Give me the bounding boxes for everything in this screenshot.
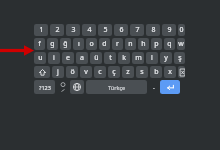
staticText: g (50, 39, 55, 49)
staticText: 7 (135, 25, 140, 35)
button[interactable]: ğ (60, 38, 71, 50)
button[interactable]: b (150, 66, 162, 78)
button[interactable]: 3 (66, 24, 80, 36)
staticText: k (122, 53, 126, 63)
staticText: 8 (151, 25, 156, 35)
staticText: 0 (179, 25, 184, 35)
button[interactable]: 7 (130, 24, 144, 36)
button[interactable]: Enter (160, 80, 180, 94)
button[interactable]: k (118, 52, 130, 64)
button[interactable]: ü (90, 52, 102, 64)
staticText: r (116, 39, 119, 49)
staticText: v (84, 67, 88, 77)
button[interactable]: Türkçe (86, 80, 147, 94)
staticText: 3 (71, 25, 76, 35)
staticText: x (168, 67, 172, 77)
staticText: h (141, 39, 146, 49)
staticText: b (154, 67, 159, 77)
staticText: u (38, 53, 43, 63)
button[interactable] (178, 66, 185, 78)
button[interactable]: v (80, 66, 92, 78)
button[interactable]: y (160, 52, 172, 64)
staticText: 1 (39, 25, 44, 35)
staticText: ş (178, 53, 182, 63)
staticText: 5 (103, 25, 108, 35)
staticText: 4 (87, 25, 92, 35)
staticText: a (80, 53, 84, 63)
staticText: w (178, 39, 184, 49)
button[interactable]: x (164, 66, 176, 78)
button[interactable]: z (122, 66, 134, 78)
button[interactable]: 4 (82, 24, 96, 36)
button[interactable]: 1 (34, 24, 48, 36)
staticText: 9 (167, 25, 172, 35)
button[interactable]: g (47, 38, 58, 50)
button[interactable]: l (146, 52, 158, 64)
button[interactable]: 0 (178, 24, 185, 36)
button[interactable]: Change language (70, 80, 84, 94)
button[interactable]: u (34, 52, 46, 64)
button[interactable]: i (48, 52, 60, 64)
button[interactable]: m (132, 52, 144, 64)
button[interactable] (34, 66, 50, 78)
button[interactable]: ç (108, 66, 120, 78)
button[interactable]: 8 (146, 24, 160, 36)
button[interactable]: d (99, 38, 110, 50)
button[interactable]: e (62, 52, 74, 64)
button[interactable]: ?123 (34, 80, 55, 94)
button[interactable]: Emoji (57, 80, 68, 94)
staticText: Türkçe (108, 84, 126, 91)
button[interactable]: t (104, 52, 116, 64)
staticText: c (98, 67, 102, 77)
staticText: y (164, 53, 168, 63)
staticText: 2 (55, 25, 60, 35)
staticText: ü (94, 53, 99, 63)
button[interactable]: a (76, 52, 88, 64)
button[interactable]: h (138, 38, 149, 50)
staticText: d (102, 39, 107, 49)
button[interactable]: p (151, 38, 162, 50)
button[interactable]: 2 (50, 24, 64, 36)
button[interactable]: j (52, 66, 64, 78)
button[interactable]: 6 (114, 24, 128, 36)
button[interactable]: n (125, 38, 136, 50)
staticText: z (126, 67, 130, 77)
staticText: l (151, 53, 153, 63)
button[interactable]: c (94, 66, 106, 78)
staticText: ö (70, 67, 75, 77)
button[interactable]: f (34, 38, 45, 50)
staticText: j (57, 67, 59, 77)
staticText: i (53, 53, 55, 63)
staticText: m (135, 53, 142, 63)
staticText: e (66, 53, 70, 63)
staticText: t (109, 53, 112, 63)
staticText: q (167, 39, 172, 49)
button[interactable]: ş (174, 52, 185, 64)
staticText: ı (78, 39, 80, 49)
button[interactable]: ı (73, 38, 84, 50)
button[interactable]: q (164, 38, 175, 50)
staticText: o (89, 39, 94, 49)
staticText: 6 (119, 25, 124, 35)
button[interactable]: . (149, 80, 158, 94)
staticText: ?123 (39, 84, 51, 91)
staticText: s (140, 67, 144, 77)
staticText: f (38, 39, 41, 49)
staticText: . (153, 82, 155, 92)
staticText: p (154, 39, 159, 49)
button[interactable]: r (112, 38, 123, 50)
staticText: ğ (63, 39, 68, 49)
button[interactable]: o (86, 38, 97, 50)
button[interactable]: 9 (162, 24, 176, 36)
button[interactable]: w (177, 38, 185, 50)
staticText: ç (112, 67, 116, 77)
button[interactable]: 5 (98, 24, 112, 36)
button[interactable]: ö (66, 66, 78, 78)
staticText: n (128, 39, 133, 49)
button[interactable]: s (136, 66, 148, 78)
